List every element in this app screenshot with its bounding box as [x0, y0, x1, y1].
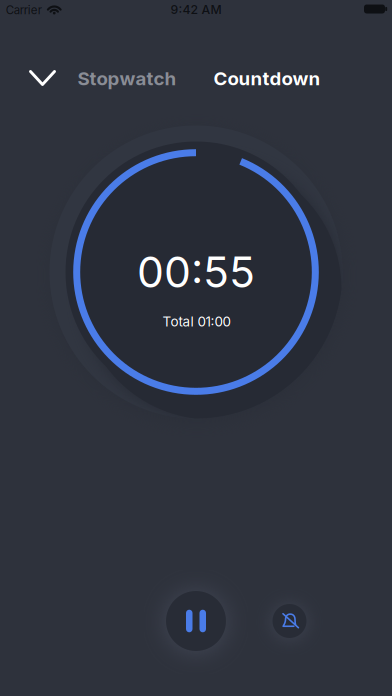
staticText: Carrier — [6, 3, 42, 17]
button[interactable]: Stopwatch — [68, 56, 186, 100]
staticText: Countdown — [213, 67, 320, 90]
staticText: 00:55 — [137, 246, 255, 298]
button[interactable]: Pause — [151, 576, 241, 666]
staticText: Total 01:00 — [162, 313, 230, 330]
button[interactable]: Collapse — [17, 56, 67, 100]
staticText: Stopwatch — [77, 67, 176, 90]
button[interactable]: Mute alarm — [259, 591, 319, 651]
staticText: 9:42 AM — [170, 2, 221, 17]
button[interactable]: Countdown — [207, 56, 327, 100]
